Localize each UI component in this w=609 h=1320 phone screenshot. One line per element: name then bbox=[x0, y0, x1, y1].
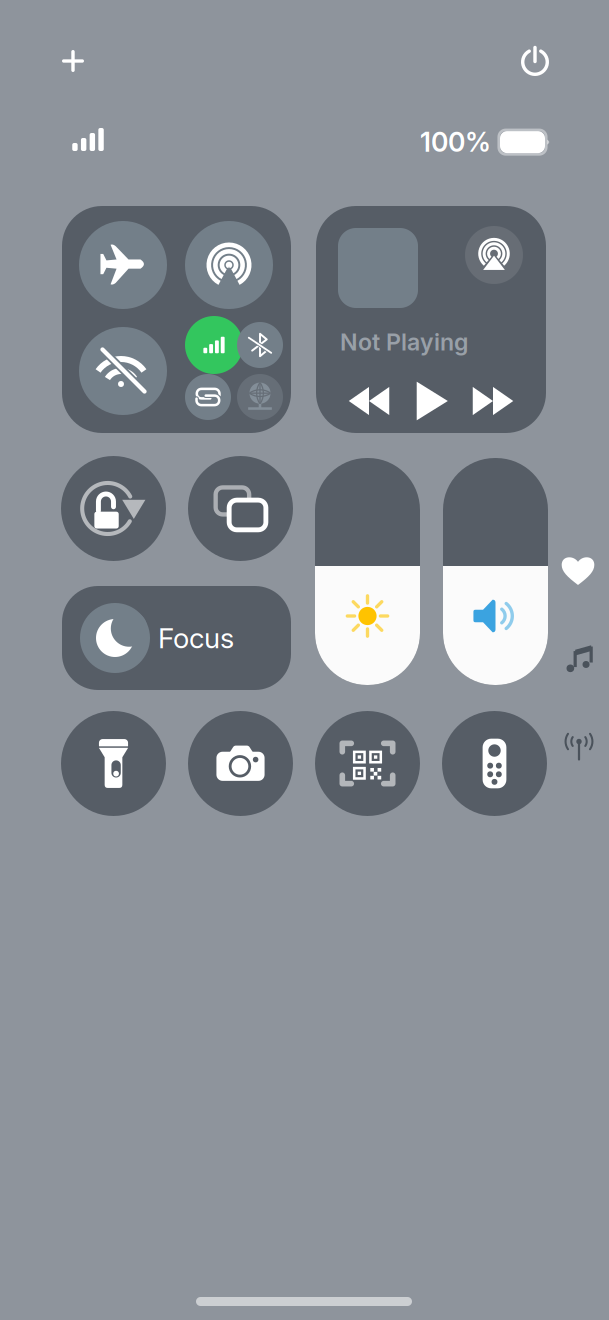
staticText: Focus bbox=[158, 621, 234, 655]
button[interactable]: Add control bbox=[49, 37, 97, 85]
button[interactable]: Airplane Mode bbox=[79, 221, 167, 309]
button[interactable]: Camera bbox=[188, 711, 293, 816]
button[interactable]: Volume bbox=[443, 458, 548, 685]
button[interactable]: Rewind bbox=[338, 373, 400, 429]
button[interactable]: VPN bbox=[237, 374, 283, 420]
button[interactable]: AirDrop bbox=[185, 221, 273, 309]
button[interactable]: Brightness bbox=[315, 458, 420, 685]
button[interactable]: Now Playing bbox=[557, 638, 601, 682]
button[interactable]: Home bbox=[556, 548, 600, 592]
staticText: 100% bbox=[420, 126, 491, 158]
button[interactable]: Focus bbox=[62, 586, 291, 690]
button[interactable]: Play bbox=[400, 373, 462, 429]
button[interactable]: Code Scanner bbox=[315, 711, 420, 816]
button[interactable]: Rotation Lock bbox=[61, 456, 166, 561]
button[interactable]: Cellular Data bbox=[185, 316, 243, 374]
staticText: Not Playing bbox=[340, 328, 468, 356]
button[interactable]: Bluetooth bbox=[237, 322, 283, 368]
button[interactable]: AirPlay bbox=[465, 226, 523, 284]
button[interactable]: Flashlight bbox=[61, 711, 166, 816]
button[interactable]: Screen Mirroring bbox=[188, 456, 293, 561]
button[interactable]: Apple TV Remote bbox=[442, 711, 547, 816]
button[interactable]: Fast Forward bbox=[462, 373, 524, 429]
button[interactable]: Power off bbox=[511, 37, 559, 85]
button[interactable]: Wi-Fi bbox=[79, 327, 167, 415]
button[interactable]: Personal Hotspot bbox=[185, 374, 231, 420]
button[interactable]: Connectivity bbox=[557, 724, 601, 768]
